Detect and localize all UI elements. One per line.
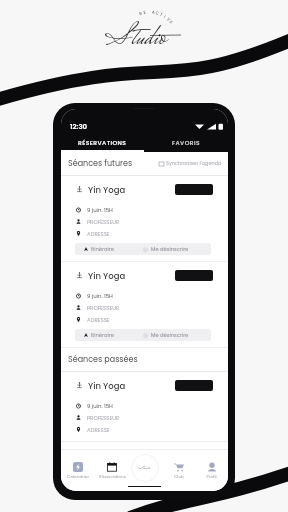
staticText: Synchroniser l'agenda xyxy=(166,160,222,167)
button[interactable]: Synchroniser l'agenda xyxy=(159,160,222,167)
staticText: Séances passées xyxy=(68,354,138,365)
button[interactable]: Yin Yoga xyxy=(61,372,228,441)
staticText: 12:30 xyxy=(70,122,88,132)
staticText: PROFESSEUR xyxy=(87,304,120,312)
button[interactable]: FAVORIS xyxy=(144,139,228,152)
staticText: 9 juin. 15H xyxy=(87,402,113,410)
staticText: Club xyxy=(174,474,184,480)
staticText: 9 juin. 15H xyxy=(87,206,113,214)
staticText: Itinéraire xyxy=(91,246,114,253)
button[interactable]: Me désinscrire xyxy=(143,243,211,255)
button[interactable]: RÉSERVATIONS xyxy=(61,139,144,152)
staticText: Me désinscrire xyxy=(151,246,189,253)
staticText: FAVORIS xyxy=(172,139,200,147)
button[interactable]: Profil xyxy=(195,453,228,480)
button[interactable]: Studio home xyxy=(131,454,159,482)
staticText: 9 juin. 15H xyxy=(87,292,113,300)
staticText: Yin Yoga xyxy=(88,184,126,196)
button[interactable]: Réservations xyxy=(95,453,129,480)
button[interactable]: Calendrier xyxy=(61,453,95,480)
staticText: RÉSERVATIONS xyxy=(78,139,127,147)
staticText: PROFESSEUR xyxy=(87,218,120,226)
staticText: Réservations xyxy=(99,474,126,480)
button[interactable]: Yin Yoga xyxy=(61,262,228,347)
staticText: Yin Yoga xyxy=(88,380,126,392)
staticText: Profil xyxy=(206,474,217,480)
staticText: PROFESSEUR xyxy=(87,414,120,422)
button[interactable]: Club xyxy=(162,453,195,480)
button[interactable]: Me désinscrire xyxy=(143,329,211,341)
button[interactable]: Yin Yoga xyxy=(61,176,228,261)
staticText: ADRESSE xyxy=(87,426,110,434)
staticText: Itinéraire xyxy=(91,332,114,339)
staticText: Studio xyxy=(105,17,166,63)
staticText: Séances futures xyxy=(68,158,133,169)
staticText: Studio xyxy=(138,464,151,473)
staticText: ADRESSE xyxy=(87,316,110,324)
staticText: ADRESSE xyxy=(87,230,110,238)
staticText: Me désinscrire xyxy=(151,332,189,339)
button[interactable]: Itinéraire xyxy=(75,329,143,341)
button[interactable]: Itinéraire xyxy=(75,243,143,255)
staticText: Yin Yoga xyxy=(88,270,126,282)
staticText: Calendrier xyxy=(67,474,89,480)
